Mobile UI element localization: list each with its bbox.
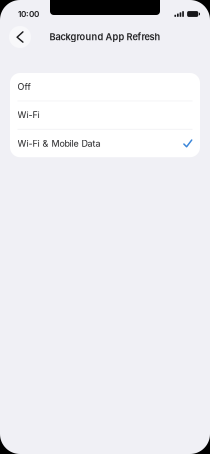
staticText: Wi-Fi & Mobile Data [17, 138, 100, 149]
staticText: Background App Refresh [49, 31, 160, 42]
button[interactable]: Wi-Fi & Mobile Data [10, 130, 200, 157]
staticText: Off [17, 81, 30, 92]
staticText: 10:00 [18, 9, 39, 19]
staticText: Wi-Fi [17, 110, 39, 120]
button[interactable]: Wi-Fi [10, 101, 200, 129]
button[interactable]: Off [10, 73, 200, 101]
button[interactable]: Back [9, 26, 31, 48]
